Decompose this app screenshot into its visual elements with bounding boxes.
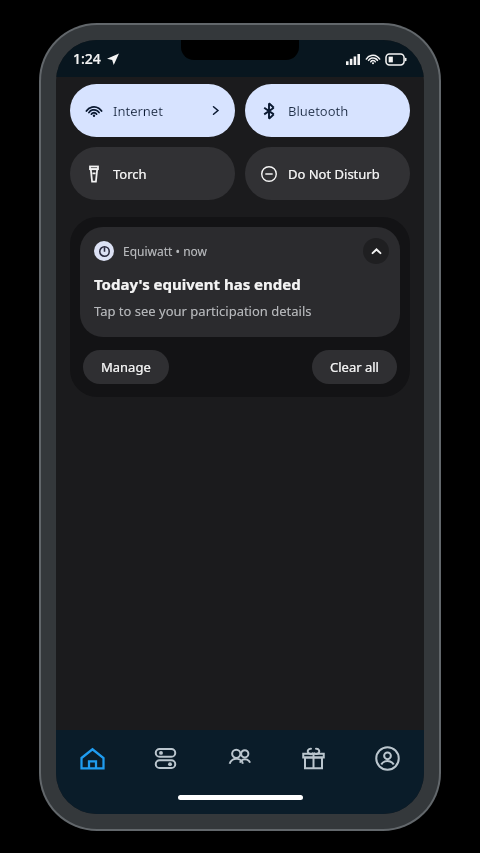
staticText: 1:24 bbox=[73, 49, 101, 68]
staticText: Do Not Disturb bbox=[288, 165, 380, 183]
staticText: Clear all bbox=[330, 358, 379, 376]
button[interactable]: Clear all bbox=[312, 350, 397, 384]
button[interactable]: Manage bbox=[83, 350, 169, 384]
button[interactable]: Rewards bbox=[276, 730, 350, 786]
button[interactable]: Profile bbox=[350, 730, 424, 786]
staticText: Today's equivent has ended bbox=[94, 274, 301, 294]
button[interactable]: Community bbox=[202, 730, 276, 786]
button[interactable]: Equiwatt • now bbox=[80, 227, 400, 337]
button[interactable]: Bluetooth bbox=[245, 84, 410, 137]
button[interactable]: Torch bbox=[70, 147, 235, 200]
staticText: Manage bbox=[101, 358, 151, 376]
button[interactable]: Home bbox=[56, 730, 129, 786]
button[interactable]: Internet bbox=[70, 84, 235, 137]
button[interactable]: Devices bbox=[129, 730, 202, 786]
button[interactable]: Collapse notification bbox=[363, 238, 389, 264]
staticText: Internet bbox=[113, 102, 163, 120]
staticText: Equiwatt • now bbox=[123, 243, 208, 259]
staticText: Tap to see your participation details bbox=[94, 302, 312, 320]
staticText: Torch bbox=[113, 165, 147, 183]
staticText: Bluetooth bbox=[288, 102, 349, 120]
button[interactable]: Do Not Disturb bbox=[245, 147, 410, 200]
